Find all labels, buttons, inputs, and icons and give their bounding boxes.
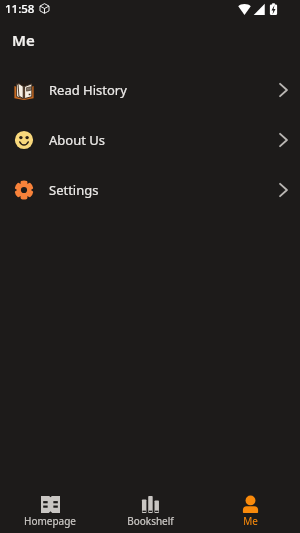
staticText: Bookshelf — [127, 514, 174, 528]
staticText: Read History — [49, 81, 127, 99]
staticText: Me — [243, 514, 258, 528]
button[interactable]: About Us — [0, 115, 300, 165]
button[interactable]: Bookshelf — [100, 478, 200, 533]
staticText: Homepage — [24, 514, 76, 528]
staticText: Settings — [49, 181, 99, 199]
staticText: 11:58 — [5, 1, 35, 17]
button[interactable]: Me — [200, 478, 300, 533]
button[interactable]: Read History — [0, 65, 300, 115]
button[interactable]: Settings — [0, 165, 300, 215]
button[interactable]: Homepage — [0, 478, 100, 533]
staticText: About Us — [49, 131, 106, 149]
staticText: Me — [12, 30, 35, 50]
